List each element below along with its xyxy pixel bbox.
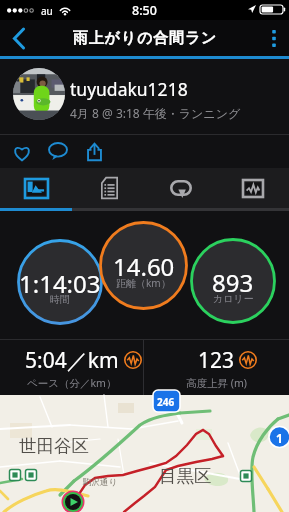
staticText: 14.60	[113, 250, 175, 283]
staticText: ペース（分／km）	[27, 376, 117, 390]
staticText: 893	[212, 266, 254, 299]
staticText: 時間	[50, 293, 70, 306]
staticText: 距離（km）	[116, 276, 171, 290]
staticText: 123	[198, 346, 235, 375]
staticText: 8:50	[132, 2, 157, 19]
button[interactable]: More options	[259, 20, 289, 56]
staticText: 5:04／km	[25, 346, 119, 375]
button[interactable]: Share	[76, 135, 112, 168]
button[interactable]: Kudos	[4, 135, 40, 168]
staticText: 1	[276, 430, 283, 446]
button[interactable]: Time	[17, 239, 103, 325]
button[interactable]: Details	[73, 168, 145, 208]
button[interactable]: Comment	[40, 135, 76, 168]
staticText: tuyudaku1218	[70, 77, 188, 101]
staticText: 駒沢通り	[83, 477, 118, 488]
staticText: 世田谷区	[19, 435, 89, 457]
staticText: 雨上がりの合間ラン	[73, 29, 217, 48]
button[interactable]: tuyudaku1218	[0, 59, 289, 134]
button[interactable]: 123	[144, 340, 289, 395]
staticText: 高度上昇 (m)	[186, 376, 247, 390]
button[interactable]: Calories	[190, 238, 276, 324]
button[interactable]: Photos	[0, 168, 73, 208]
staticText: 1:14:03	[19, 267, 101, 300]
button[interactable]: 5:04／km	[0, 340, 144, 395]
button[interactable]: Route map	[0, 395, 289, 512]
staticText: au	[41, 4, 53, 18]
staticText: 246	[157, 395, 175, 409]
button[interactable]: Analysis	[217, 168, 289, 208]
button[interactable]: Back	[0, 20, 38, 56]
staticText: 目黒区	[159, 465, 212, 487]
staticText: カロリー	[213, 292, 254, 305]
staticText: 4月 8 @ 3:18 午後・ランニング	[70, 105, 241, 121]
button[interactable]: Distance	[99, 221, 188, 310]
button[interactable]: Segments	[145, 168, 217, 208]
